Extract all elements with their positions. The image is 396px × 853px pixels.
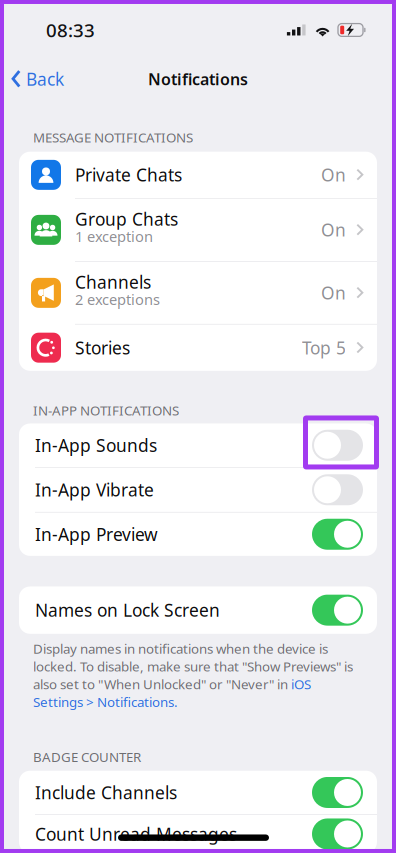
staticText: On <box>321 281 346 304</box>
staticText: Stories <box>75 336 130 359</box>
staticText: Notifications <box>148 68 248 90</box>
staticText: Names on Lock Screen <box>35 599 220 622</box>
staticText: In-App Preview <box>35 523 158 546</box>
staticText: Count Unread Messages <box>35 822 237 845</box>
staticText: On <box>321 163 346 186</box>
staticText: Include Channels <box>35 781 177 804</box>
staticText: Channels <box>75 271 151 294</box>
staticText: 2 exceptions <box>75 290 160 309</box>
staticText: Group Chats <box>75 208 178 231</box>
staticText: Top 5 <box>302 336 346 359</box>
button[interactable]: Group Chats <box>19 199 377 261</box>
button[interactable]: Stories <box>19 325 377 371</box>
staticText: In-App Vibrate <box>35 478 154 501</box>
button[interactable]: In-App Preview <box>19 513 377 556</box>
staticText: Back <box>26 67 64 90</box>
staticText: Display names in notifications when the … <box>33 640 353 711</box>
staticText: 1 exception <box>75 227 153 246</box>
button[interactable]: Count Unread Messages <box>19 815 377 853</box>
staticText: 08:33 <box>46 18 95 42</box>
staticText: On <box>321 218 346 241</box>
button[interactable]: Names on Lock Screen <box>19 586 377 634</box>
staticText: IN-APP NOTIFICATIONS <box>33 401 179 419</box>
button[interactable]: In-App Vibrate <box>19 468 377 512</box>
staticText: Private Chats <box>75 163 182 186</box>
button[interactable]: Back <box>0 60 74 98</box>
button[interactable]: Include Channels <box>19 771 377 814</box>
staticText: MESSAGE NOTIFICATIONS <box>33 129 193 146</box>
staticText: In-App Sounds <box>35 434 157 457</box>
button[interactable]: Channels <box>19 262 377 324</box>
button[interactable]: In-App Sounds <box>19 423 377 467</box>
staticText: BADGE COUNTER <box>33 748 141 766</box>
button[interactable]: Private Chats <box>19 152 377 198</box>
